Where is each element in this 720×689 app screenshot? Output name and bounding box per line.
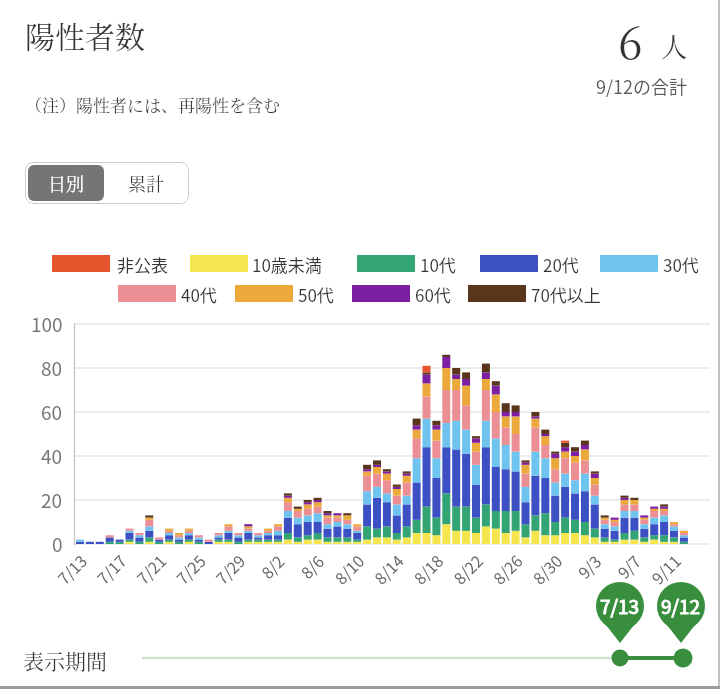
staticText: 50代 bbox=[298, 282, 334, 307]
staticText: 日別 bbox=[48, 170, 84, 196]
staticText: 人 bbox=[661, 27, 688, 64]
staticText: 非公表 bbox=[117, 252, 168, 277]
staticText: 10歳未満 bbox=[252, 252, 322, 277]
staticText: 累計 bbox=[128, 170, 164, 196]
staticText: 30代 bbox=[663, 252, 699, 277]
staticText: 60代 bbox=[415, 282, 451, 307]
button[interactable]: 日別 bbox=[28, 165, 104, 201]
staticText: 70代以上 bbox=[531, 282, 601, 307]
staticText: 陽性者数 bbox=[25, 13, 145, 56]
staticText: 6 bbox=[618, 8, 643, 71]
staticText: 20代 bbox=[543, 252, 579, 277]
staticText: 40代 bbox=[181, 282, 217, 307]
button[interactable]: 累計 bbox=[105, 165, 186, 201]
staticText: 表示期間 bbox=[23, 645, 107, 675]
staticText: （注）陽性者には、再陽性を含む bbox=[25, 92, 280, 116]
staticText: 10代 bbox=[420, 252, 456, 277]
staticText: 9/12の合計 bbox=[596, 73, 688, 99]
